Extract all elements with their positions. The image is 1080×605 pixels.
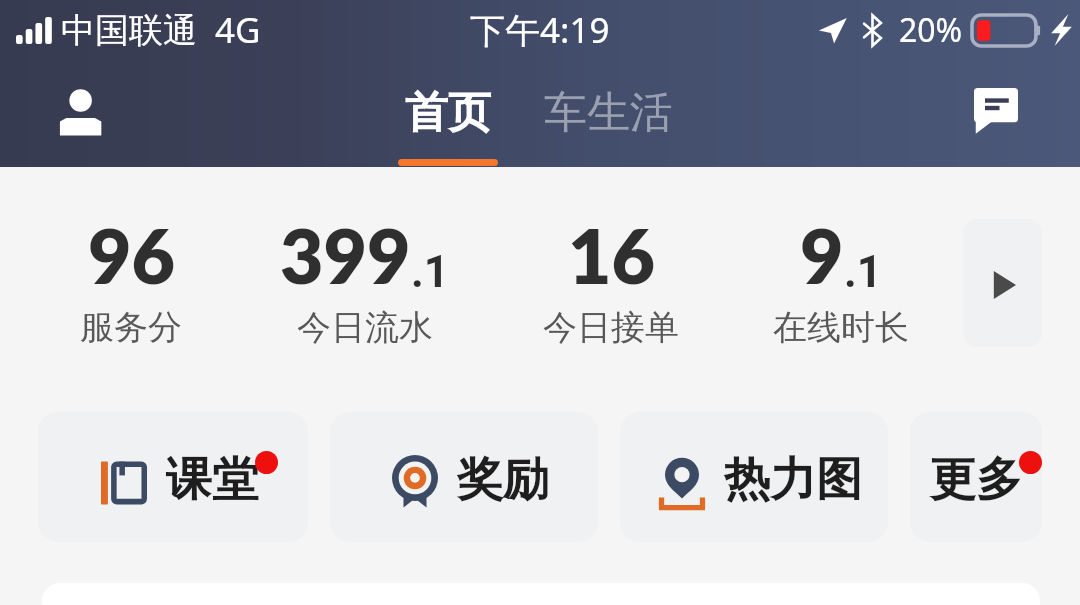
- staticText: 9: [800, 210, 844, 300]
- staticText: 车生活: [544, 86, 673, 140]
- staticText: 96: [88, 210, 175, 300]
- button[interactable]: 课堂: [38, 412, 308, 542]
- staticText: 下午4:19: [470, 6, 610, 54]
- staticText: 今日接单: [543, 306, 679, 349]
- button[interactable]: 96: [1, 206, 261, 351]
- staticText: 奖励: [457, 451, 549, 509]
- staticText: 16: [568, 210, 655, 300]
- button[interactable]: More statistics: [963, 219, 1042, 347]
- staticText: 20%: [899, 8, 963, 52]
- button[interactable]: 热力图: [620, 412, 888, 542]
- button[interactable]: 首页: [383, 78, 512, 167]
- button[interactable]: 奖励: [330, 412, 598, 542]
- button[interactable]: 车生活: [530, 78, 687, 148]
- staticText: 课堂: [166, 451, 258, 509]
- staticText: 在线时长: [773, 306, 909, 349]
- button[interactable]: 16: [481, 206, 741, 351]
- staticText: .1: [844, 246, 883, 298]
- button[interactable]: 399: [235, 206, 495, 351]
- staticText: 热力图: [724, 451, 862, 509]
- button[interactable]: Profile: [42, 71, 122, 151]
- staticText: 399: [280, 210, 411, 300]
- staticText: 更多: [930, 451, 1022, 509]
- staticText: 今日流水: [297, 306, 433, 349]
- button[interactable]: 9: [711, 206, 971, 351]
- button[interactable]: Messages: [958, 72, 1034, 148]
- staticText: 4G: [215, 6, 261, 54]
- staticText: 服务分: [80, 306, 182, 349]
- staticText: 中国联通: [61, 9, 197, 52]
- staticText: 首页: [405, 86, 491, 140]
- staticText: .1: [411, 246, 450, 298]
- button[interactable]: 更多: [910, 412, 1042, 542]
